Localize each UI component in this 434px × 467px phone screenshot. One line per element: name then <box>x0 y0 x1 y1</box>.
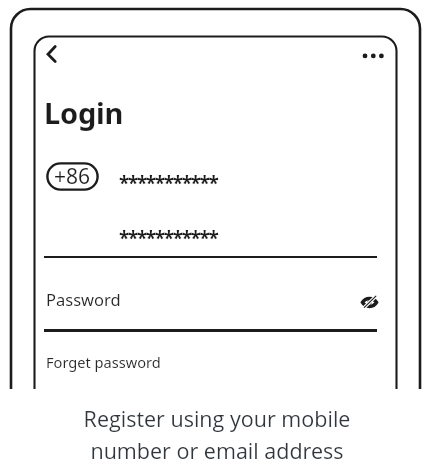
staticText: +86 <box>54 162 91 191</box>
staticText: Login <box>44 93 124 132</box>
button[interactable]: Show password <box>360 293 381 312</box>
button[interactable]: Forget password <box>46 352 161 372</box>
button[interactable]: +86 <box>46 162 99 191</box>
staticText: Password <box>46 288 121 310</box>
button[interactable]: Back <box>44 43 66 65</box>
staticText: *********** <box>119 225 218 251</box>
staticText: *********** <box>119 170 218 196</box>
button[interactable]: More options <box>356 44 390 68</box>
staticText: Register using your mobile number or ema… <box>0 404 434 465</box>
